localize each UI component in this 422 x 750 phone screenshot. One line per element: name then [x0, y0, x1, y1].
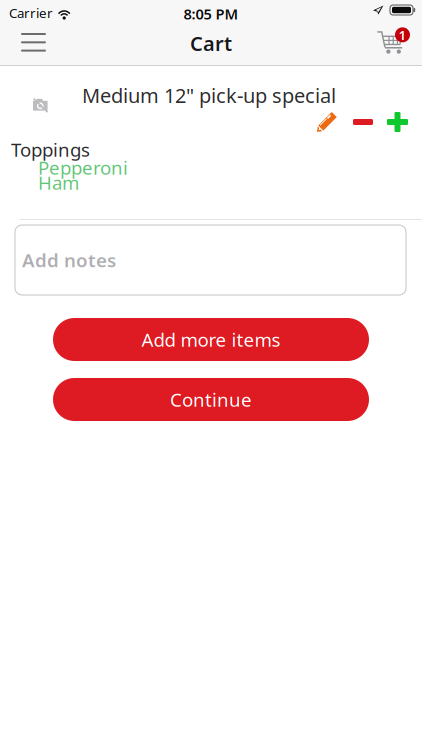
staticText: Pepperoni — [38, 155, 128, 180]
staticText: 8:05 PM — [183, 4, 238, 23]
staticText: Toppings — [11, 137, 90, 162]
button[interactable]: Continue — [53, 378, 369, 421]
button[interactable]: Decrease quantity — [347, 106, 379, 138]
staticText: Add more items — [141, 327, 280, 352]
staticText: Carrier — [9, 4, 53, 22]
button[interactable]: Edit item — [311, 106, 343, 138]
button[interactable]: Increase quantity — [381, 106, 414, 138]
button[interactable]: Add notes — [15, 225, 406, 295]
staticText: Medium 12" pick-up special — [82, 82, 336, 109]
button[interactable]: Add more items — [53, 318, 369, 361]
button[interactable]: Cart — [372, 22, 415, 58]
staticText: Add notes — [22, 248, 116, 272]
button[interactable]: Menu — [10, 22, 57, 63]
staticText: 1 — [398, 26, 406, 44]
staticText: Cart — [190, 30, 232, 57]
staticText: Ham — [38, 170, 79, 195]
staticText: Continue — [170, 387, 252, 412]
